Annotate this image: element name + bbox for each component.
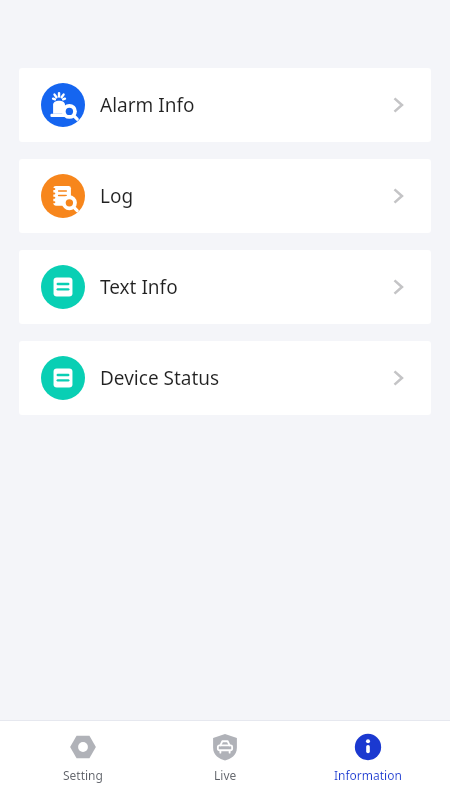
button[interactable]: Live <box>165 721 285 783</box>
button[interactable]: Text Info <box>19 250 431 324</box>
other: Information <box>354 733 382 761</box>
button[interactable]: Setting <box>23 721 143 783</box>
staticText: Setting <box>63 767 103 783</box>
staticText: Text Info <box>100 274 178 300</box>
button[interactable]: Alarm Info <box>19 68 431 142</box>
staticText: Device Status <box>100 365 220 391</box>
button[interactable]: Device Status <box>19 341 431 415</box>
other: Live <box>211 733 239 761</box>
staticText: Information <box>334 767 402 783</box>
button[interactable]: Log <box>19 159 431 233</box>
staticText: Log <box>100 183 134 209</box>
staticText: Alarm Info <box>100 92 195 118</box>
other: Setting <box>69 733 97 761</box>
button[interactable]: Information <box>308 721 428 783</box>
staticText: Live <box>214 767 237 783</box>
